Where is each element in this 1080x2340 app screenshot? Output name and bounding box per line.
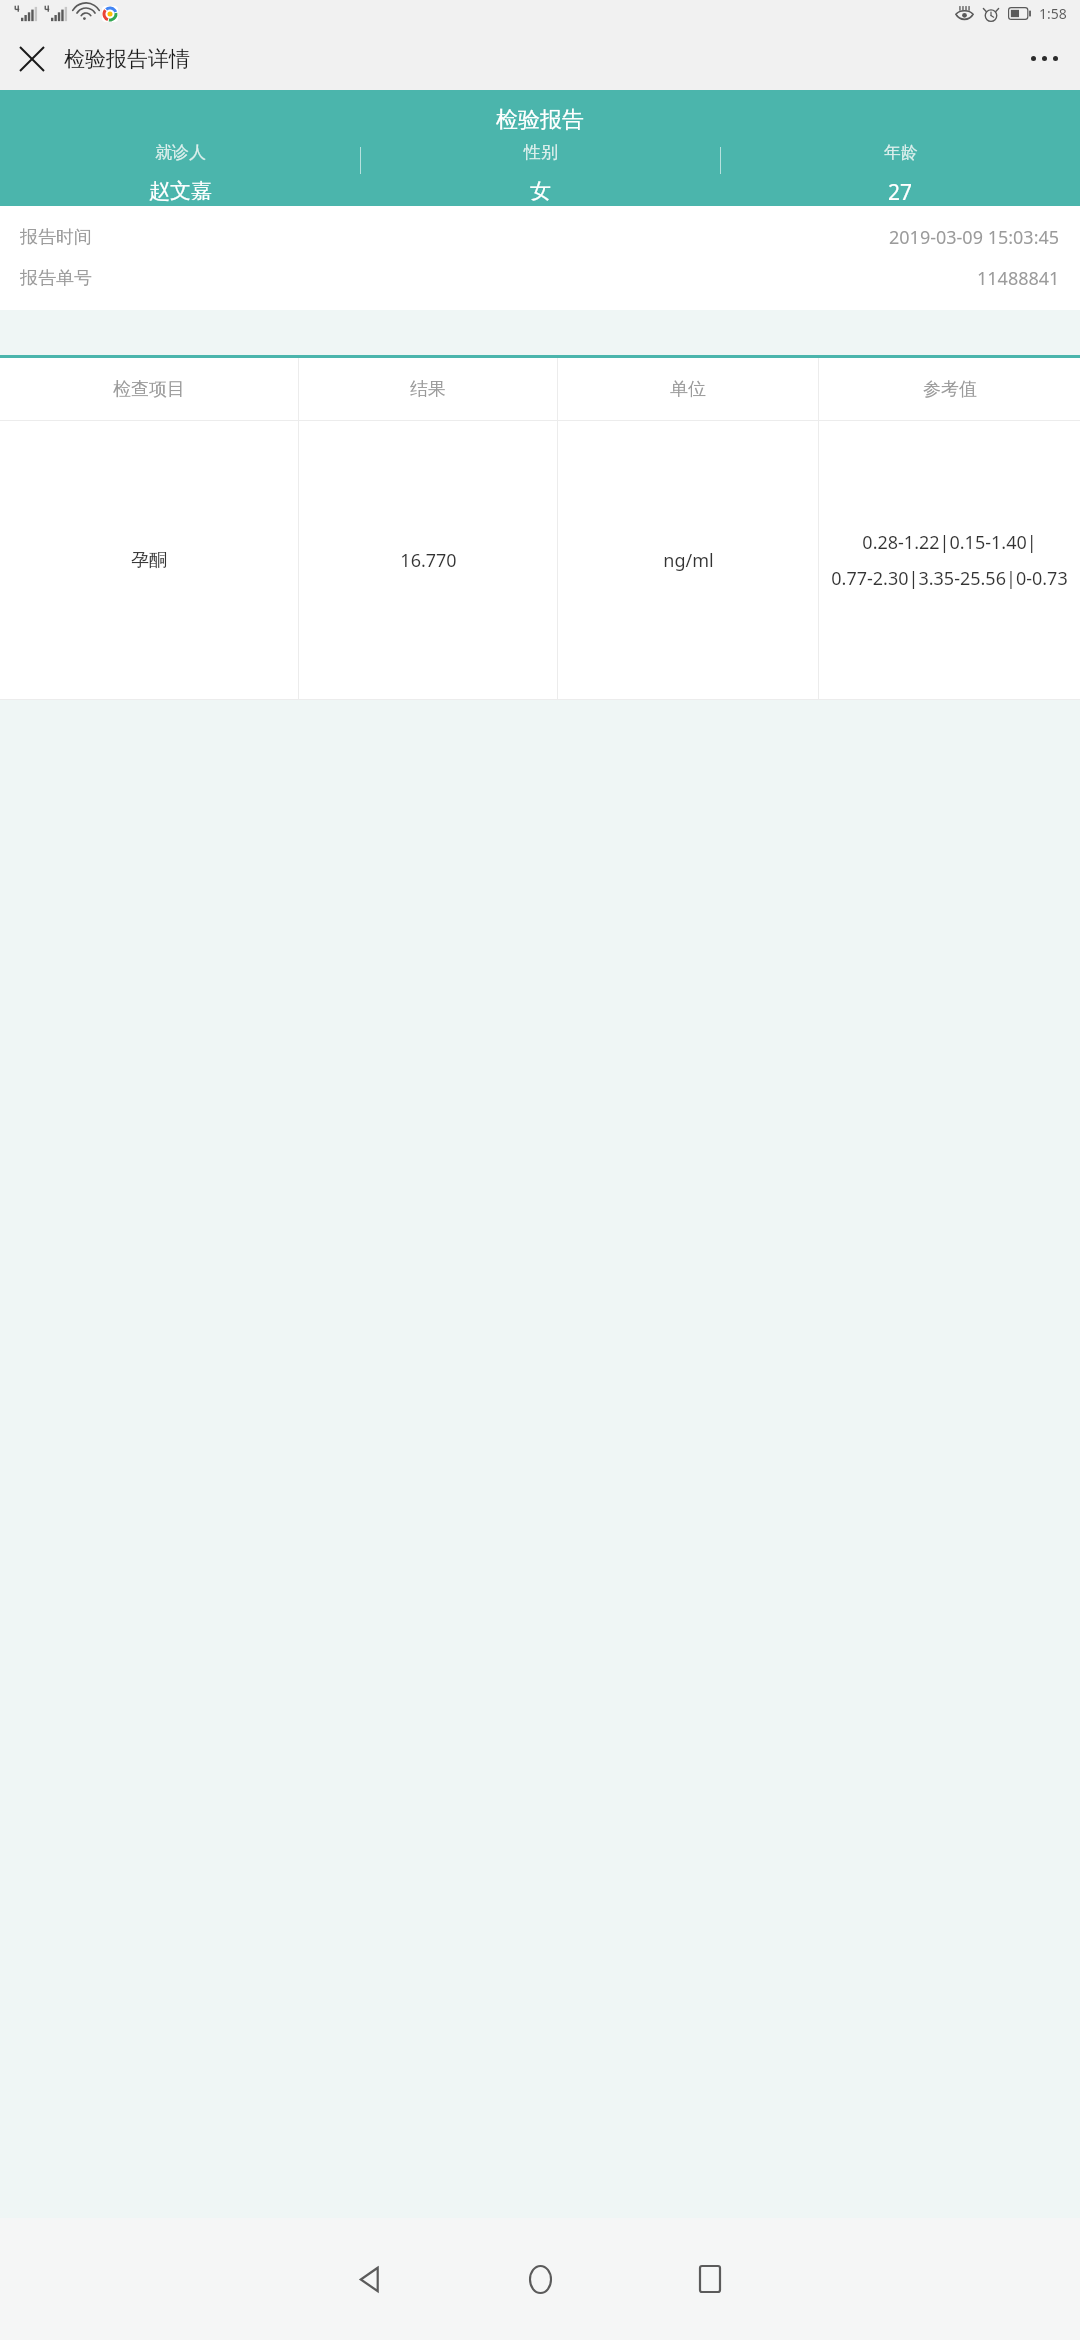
button[interactable]: 报告时间 [20,217,1060,258]
staticText: 检查项目 [113,378,185,401]
staticText: 女 [530,178,551,204]
staticText: 参考值 [923,378,977,401]
staticText: 检验报告 [496,106,584,134]
staticText: 就诊人 [155,142,206,163]
staticText: ng/ml [663,548,714,573]
button[interactable]: Close [0,27,64,90]
staticText: 赵文嘉 [149,178,212,204]
staticText: 单位 [670,378,706,401]
staticText: 11488841 [977,266,1060,291]
staticText: 2019-03-09 15:03:45 [889,225,1060,250]
staticText: 1:58 [1039,4,1067,23]
button[interactable]: Back [296,2218,444,2340]
staticText: 16.770 [400,548,457,573]
staticText: 年龄 [884,142,918,163]
button[interactable]: 报告单号 [20,258,1060,299]
staticText: 检验报告详情 [64,46,190,72]
button[interactable]: Home [466,2218,614,2340]
staticText: 0.28-1.22|0.15-1.40|0.77-2.30|3.35-25.56… [826,530,1073,591]
staticText: 27 [888,178,913,206]
staticText: 报告单号 [20,267,92,290]
button[interactable]: Recent apps [636,2218,784,2340]
staticText: 结果 [410,378,446,401]
button[interactable]: More options [1008,27,1080,90]
button[interactable]: 孕酮 [0,421,1080,699]
staticText: 性别 [524,142,558,163]
staticText: 报告时间 [20,226,92,249]
staticText: 孕酮 [131,549,167,572]
